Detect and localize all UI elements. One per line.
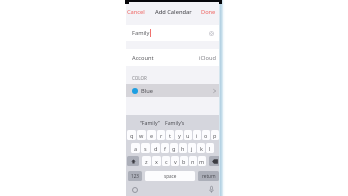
button[interactable]: Backspace [209,156,220,166]
button[interactable]: Account [126,49,220,66]
staticText: n [191,158,195,165]
button[interactable]: x [152,156,161,166]
staticText: l [209,145,211,152]
button[interactable]: space [145,171,195,181]
button[interactable]: Done [199,6,220,18]
button[interactable]: w [137,130,146,140]
button[interactable]: Shift [127,156,139,166]
staticText: e [150,132,154,139]
button[interactable]: s [141,143,150,153]
staticText: y [178,132,181,139]
staticText: w [139,132,144,139]
staticText: d [154,145,158,152]
staticText: v [174,158,177,165]
button[interactable]: e [147,130,156,140]
staticText: o [204,132,208,139]
staticText: Blue [141,87,153,95]
button[interactable]: Blue [126,84,220,97]
staticText: Family [132,29,150,37]
button[interactable]: g [170,143,178,153]
button[interactable]: n [189,156,197,166]
staticText: COLOR [132,75,147,81]
button[interactable]: o [202,130,210,140]
button[interactable]: v [171,156,179,166]
button[interactable]: u [184,130,192,140]
staticText: z [145,158,148,165]
staticText: iCloud [199,54,216,62]
button[interactable]: b [180,156,188,166]
staticText: u [186,132,190,139]
button[interactable]: q [127,130,136,140]
button[interactable]: p [211,130,219,140]
staticText: g [172,145,176,152]
staticText: i [196,132,198,139]
staticText: s [144,145,147,152]
staticText: Family’s [165,119,185,126]
staticText: Add Calendar [155,8,192,16]
button[interactable]: k [197,143,205,153]
staticText: Cancel [127,8,145,16]
button[interactable]: z [142,156,151,166]
button[interactable]: t [166,130,174,140]
button[interactable]: y [175,130,183,140]
button[interactable]: r [157,130,165,140]
button[interactable]: Family’s [162,115,188,129]
button[interactable]: Cancel [126,6,147,18]
staticText: Done [201,8,216,16]
button[interactable]: Dictate [209,186,214,193]
button[interactable]: 123 [128,171,142,181]
button[interactable]: “Family” [137,115,162,129]
staticText: c [165,158,168,165]
button[interactable]: j [188,143,196,153]
staticText: q [130,132,134,139]
button[interactable]: c [162,156,170,166]
button[interactable]: Clear text [209,31,214,36]
button[interactable]: l [206,143,214,153]
staticText: t [169,132,171,139]
staticText: 123 [131,173,139,179]
button[interactable]: return [198,171,219,181]
button[interactable]: Family [126,25,220,41]
staticText: return [202,173,216,179]
staticText: h [181,145,185,152]
staticText: “Family” [140,119,160,126]
button[interactable]: a [131,143,140,153]
staticText: j [191,145,193,152]
button[interactable]: f [161,143,169,153]
staticText: f [164,145,166,152]
staticText: b [182,158,186,165]
staticText: p [213,132,217,139]
button[interactable]: i [193,130,201,140]
button[interactable]: Emoji [132,187,138,193]
button[interactable]: h [179,143,187,153]
staticText: m [199,158,205,165]
staticText: Account [132,54,154,62]
staticText: r [160,132,163,139]
staticText: k [200,145,203,152]
staticText: space [164,173,177,179]
button[interactable]: m [198,156,206,166]
staticText: x [155,158,158,165]
staticText: a [134,145,138,152]
button[interactable]: d [151,143,160,153]
